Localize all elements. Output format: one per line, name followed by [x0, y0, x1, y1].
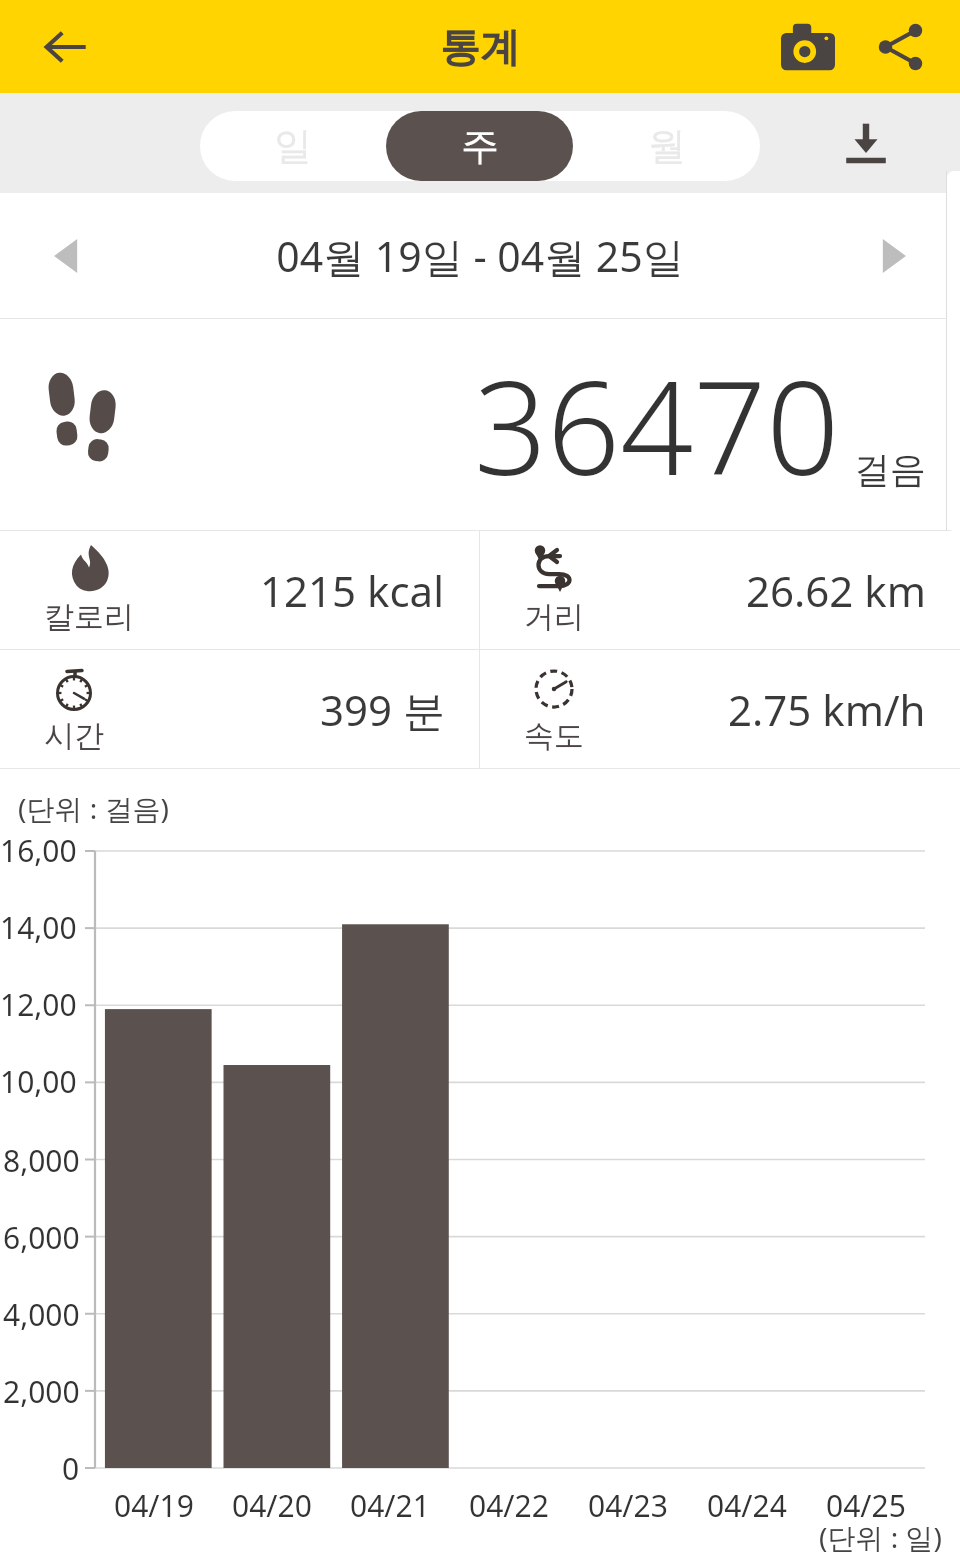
- staticText: 04/19: [114, 1485, 194, 1526]
- button[interactable]: 칼로리: [0, 531, 479, 649]
- button[interactable]: 일: [200, 111, 386, 181]
- staticText: 04/24: [707, 1485, 787, 1526]
- staticText: 시간: [44, 717, 104, 755]
- staticText: 04/23: [588, 1485, 668, 1526]
- staticText: 주: [461, 122, 499, 170]
- staticText: 10,000: [0, 1061, 80, 1103]
- staticText: 걸음: [854, 447, 926, 492]
- staticText: 16,000: [0, 830, 80, 872]
- button[interactable]: 월: [573, 111, 760, 181]
- staticText: 거리: [524, 598, 584, 636]
- button[interactable]: 주: [386, 111, 573, 181]
- staticText: 칼로리: [44, 598, 134, 636]
- staticText: 속도: [524, 717, 584, 755]
- button[interactable]: 36470: [0, 319, 960, 530]
- button[interactable]: Previous period: [24, 213, 110, 299]
- button[interactable]: 거리: [480, 531, 960, 649]
- staticText: 04/25: [826, 1485, 906, 1526]
- button[interactable]: Download: [828, 105, 904, 181]
- staticText: 4,000: [3, 1294, 80, 1335]
- staticText: 04/22: [469, 1485, 549, 1526]
- staticText: 04월 19일 - 04월 25일: [276, 228, 684, 284]
- staticText: (단위 : 걸음): [18, 789, 169, 827]
- button[interactable]: 속도: [480, 650, 960, 768]
- staticText: 2,000: [3, 1371, 80, 1412]
- staticText: 399 분: [320, 681, 445, 738]
- staticText: 월: [648, 122, 686, 170]
- staticText: 04/20: [232, 1485, 312, 1526]
- button[interactable]: Camera: [762, 1, 854, 93]
- staticText: 36470: [474, 338, 840, 512]
- button[interactable]: 시간: [0, 650, 479, 768]
- button[interactable]: Share: [854, 1, 946, 93]
- staticText: (단위 : 일): [819, 1518, 942, 1556]
- staticText: 14,000: [0, 907, 80, 949]
- button[interactable]: Back: [22, 4, 108, 90]
- staticText: 0: [62, 1448, 80, 1489]
- staticText: 일: [274, 122, 312, 170]
- staticText: 26.62 km: [746, 562, 926, 619]
- staticText: 2.75 km/h: [728, 681, 926, 738]
- staticText: 8,000: [3, 1140, 80, 1181]
- staticText: 1215 kcal: [260, 562, 445, 619]
- staticText: 6,000: [3, 1217, 80, 1258]
- staticText: 04/21: [350, 1485, 430, 1526]
- staticText: 통계: [440, 22, 520, 72]
- button[interactable]: Next period: [850, 213, 936, 299]
- staticText: 12,000: [0, 984, 80, 1026]
